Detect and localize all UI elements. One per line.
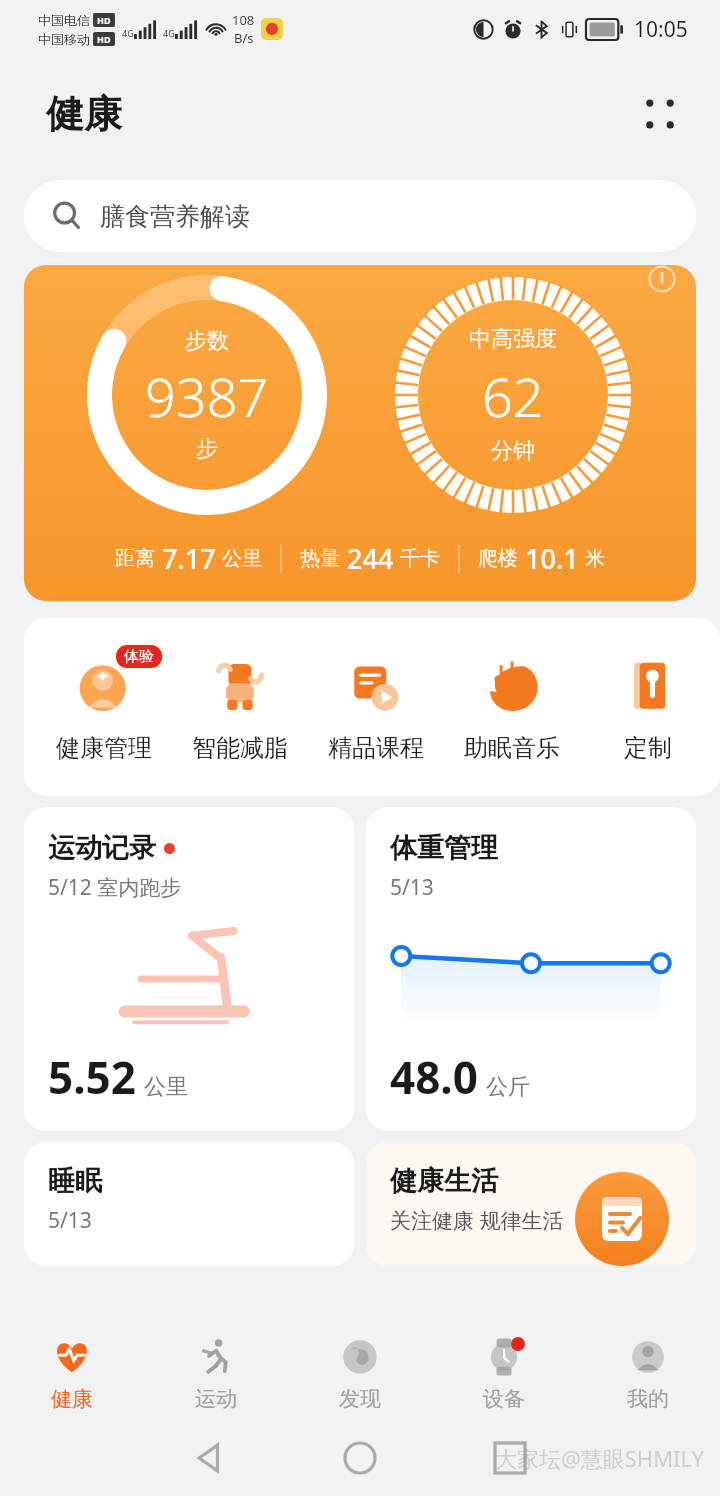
staticText: 5.52 — [48, 1047, 136, 1107]
staticText: 分钟 — [491, 437, 535, 465]
button[interactable]: 发现 — [288, 1318, 432, 1428]
staticText: 健康 — [46, 90, 122, 138]
staticText: 我的 — [627, 1386, 669, 1412]
staticText: 7.17 — [162, 540, 216, 577]
button[interactable]: More options — [634, 88, 686, 140]
staticText: 热量 — [300, 546, 340, 571]
staticText: 精品课程 — [328, 733, 424, 763]
staticText: 智能减脂 — [192, 733, 288, 763]
button[interactable]: 运动 — [144, 1318, 288, 1428]
staticText: 发现 — [339, 1386, 381, 1412]
staticText: 体验 — [124, 647, 154, 666]
staticText: 中国电信 — [38, 12, 90, 28]
staticText: 千卡 — [400, 546, 440, 571]
staticText: 助眠音乐 — [464, 733, 560, 763]
staticText: 244 — [347, 540, 394, 577]
staticText: HD — [97, 14, 111, 26]
staticText: 10.1 — [525, 540, 579, 577]
staticText: 膳食营养解读 — [100, 201, 250, 232]
staticText: 公里 — [222, 546, 262, 571]
staticText: 5/13 — [48, 1206, 92, 1235]
staticText: 步 — [196, 435, 218, 463]
staticText: 健康 — [51, 1386, 93, 1412]
staticText: 中高强度 — [469, 325, 557, 353]
staticText: 健康生活 — [390, 1164, 498, 1198]
staticText: 公里 — [144, 1073, 188, 1101]
staticText: 运动 — [195, 1386, 237, 1412]
staticText: 爬楼 — [478, 546, 518, 571]
button[interactable]: 体重管理 — [366, 807, 696, 1131]
staticText: B/s — [234, 29, 254, 47]
button[interactable]: Info — [642, 265, 682, 299]
staticText: 5/13 — [390, 873, 434, 902]
staticText: 公斤 — [486, 1073, 530, 1101]
staticText: 运动记录 — [48, 831, 156, 865]
staticText: 5/12 室内跑步 — [48, 873, 182, 902]
staticText: 4G — [163, 27, 175, 39]
staticText: 108 — [232, 11, 255, 29]
button[interactable]: 运动记录 — [24, 807, 354, 1131]
staticText: 定制 — [624, 733, 672, 763]
button[interactable]: 膳食营养解读 — [24, 180, 696, 252]
button[interactable]: 健康生活 — [366, 1142, 696, 1266]
staticText: 步数 — [185, 327, 229, 355]
staticText: 10:05 — [634, 15, 688, 44]
staticText: 9387 — [145, 359, 269, 433]
staticText: 距离 — [115, 546, 155, 571]
button[interactable]: 智能减脂 — [172, 618, 308, 796]
button[interactable]: 助眠音乐 — [444, 618, 580, 796]
button[interactable]: Info — [24, 265, 696, 601]
staticText: 体重管理 — [390, 831, 498, 865]
staticText: 中国移动 — [38, 31, 90, 47]
staticText: 关注健康 规律生活 — [390, 1206, 564, 1235]
button[interactable]: 设备 — [432, 1318, 576, 1428]
staticText: 4G — [122, 27, 134, 39]
staticText: 大家坛@慧眼SHMILY — [495, 1443, 704, 1473]
button[interactable]: 我的 — [576, 1318, 720, 1428]
staticText: 48.0 — [390, 1047, 478, 1107]
staticText: 米 — [585, 546, 605, 571]
staticText: HD — [97, 33, 111, 45]
staticText: 睡眠 — [48, 1164, 102, 1198]
button[interactable]: Add health record — [575, 1172, 669, 1266]
staticText: 62 — [482, 359, 544, 433]
button[interactable]: 睡眠 — [24, 1142, 354, 1266]
button[interactable]: 健康 — [0, 1318, 144, 1428]
staticText: 设备 — [483, 1386, 525, 1412]
button[interactable]: 体验 — [36, 618, 172, 796]
button[interactable]: 精品课程 — [308, 618, 444, 796]
button[interactable]: 定制 — [580, 618, 716, 796]
staticText: 健康管理 — [56, 733, 152, 763]
